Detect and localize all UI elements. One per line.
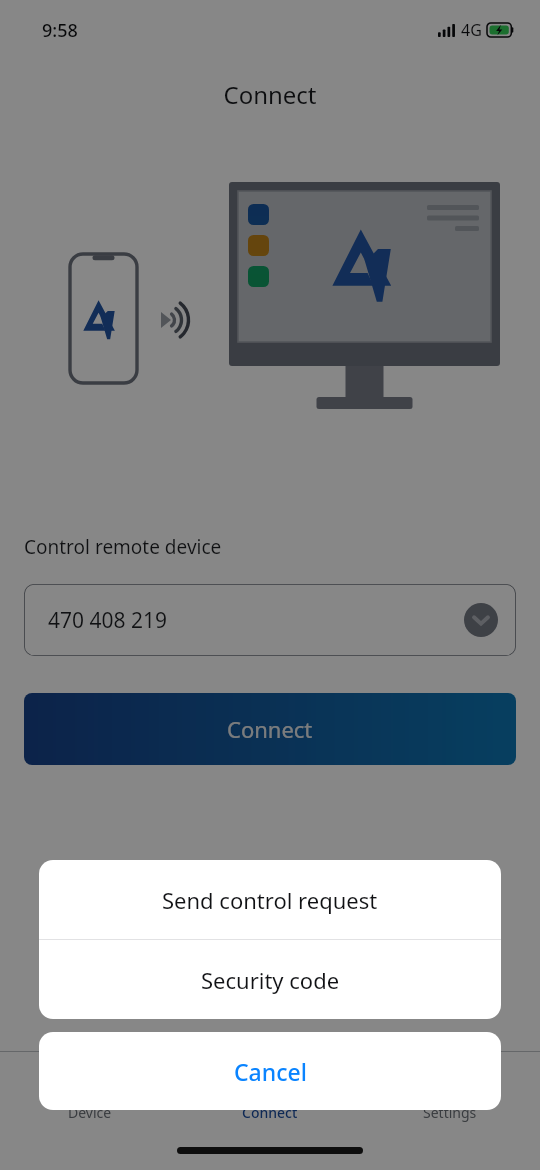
button[interactable]: Connect: [24, 693, 516, 765]
button[interactable]: Security code: [39, 940, 501, 1019]
button[interactable]: Device: [0, 1052, 180, 1130]
button[interactable]: 470 408 219: [24, 584, 516, 656]
staticText: Connect: [242, 1103, 298, 1122]
button[interactable]: Connect: [180, 1052, 360, 1130]
staticText: Connect: [227, 714, 313, 744]
staticText: 9:58: [42, 18, 78, 43]
staticText: Security code: [201, 965, 340, 995]
staticText: Device: [68, 1103, 112, 1122]
button[interactable]: Send control request: [39, 860, 501, 939]
staticText: Control remote device: [24, 534, 222, 560]
button[interactable]: Settings: [360, 1052, 540, 1130]
staticText: Settings: [423, 1103, 477, 1122]
other: Show recent addresses: [464, 603, 498, 637]
staticText: 4G: [461, 19, 482, 41]
staticText: Send control request: [162, 885, 378, 915]
staticText: Connect: [223, 78, 317, 111]
staticText: 470 408 219: [48, 606, 168, 635]
staticText: Cancel: [234, 1056, 307, 1087]
button[interactable]: Cancel: [39, 1032, 501, 1110]
